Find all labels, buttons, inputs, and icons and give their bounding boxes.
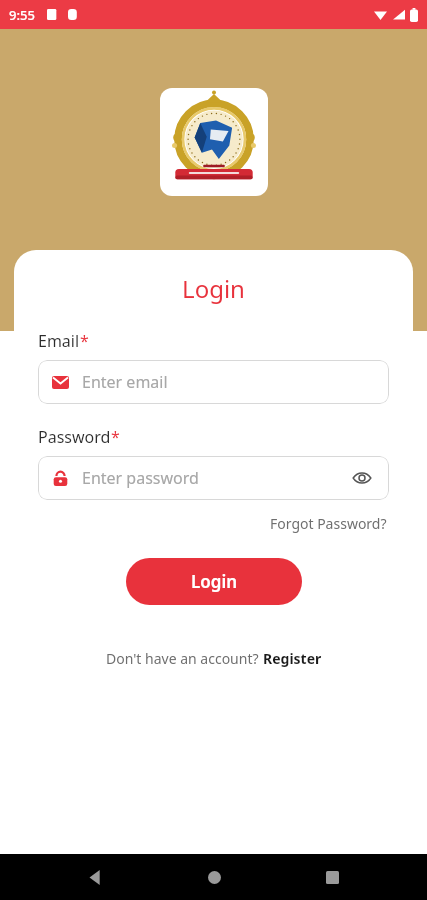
staticText: Enter password bbox=[82, 467, 349, 489]
button[interactable]: Forgot Password? bbox=[268, 512, 389, 535]
button[interactable]: Recent apps bbox=[309, 854, 355, 900]
button[interactable]: Show password bbox=[349, 465, 375, 491]
button[interactable]: Login bbox=[126, 558, 302, 605]
button[interactable]: Register bbox=[263, 649, 322, 668]
staticText: Login bbox=[38, 272, 389, 305]
staticText: Register bbox=[263, 649, 322, 668]
staticText: Email bbox=[38, 330, 80, 352]
button[interactable]: Enter password bbox=[38, 456, 389, 500]
staticText: Don't have an account? bbox=[106, 649, 263, 668]
staticText: Forgot Password? bbox=[270, 514, 387, 533]
staticText: * bbox=[111, 426, 120, 448]
button[interactable]: Enter email bbox=[38, 360, 389, 404]
staticText: Enter email bbox=[82, 371, 375, 393]
staticText: Login bbox=[191, 570, 238, 593]
button[interactable]: Home bbox=[191, 854, 237, 900]
staticText: * bbox=[80, 330, 89, 352]
staticText: Password bbox=[38, 426, 111, 448]
staticText: 9:55 bbox=[9, 6, 35, 24]
button[interactable]: Back bbox=[72, 854, 118, 900]
